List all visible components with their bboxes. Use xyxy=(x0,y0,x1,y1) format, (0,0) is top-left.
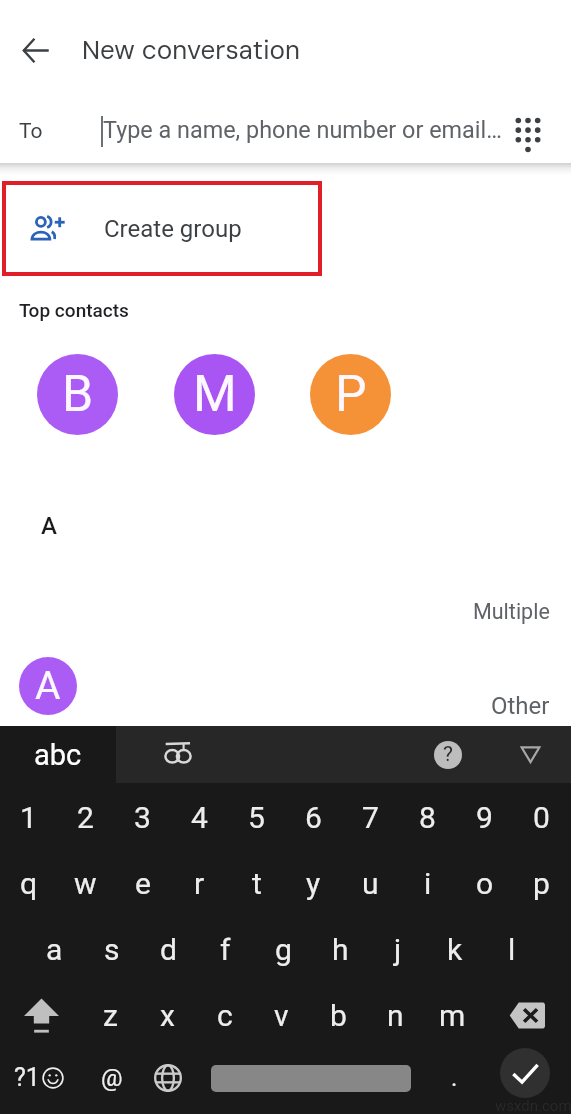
staticText: Create group xyxy=(104,215,242,243)
button[interactable]: Create group xyxy=(2,181,322,276)
staticText: c xyxy=(217,998,233,1033)
staticText: z xyxy=(103,998,118,1033)
staticText: g xyxy=(275,932,292,967)
button[interactable]: 7 xyxy=(342,789,399,846)
staticText: r xyxy=(194,866,205,901)
button[interactable]: v xyxy=(253,987,310,1044)
button[interactable]: t xyxy=(228,855,285,912)
button[interactable]: Hide keyboard xyxy=(507,726,553,783)
button[interactable]: Symbols and emoji xyxy=(0,1047,75,1109)
staticText: 2 xyxy=(77,800,94,835)
staticText: B xyxy=(62,365,94,424)
button[interactable]: s xyxy=(83,921,140,978)
staticText: Top contacts xyxy=(19,299,129,321)
button[interactable]: B xyxy=(37,354,118,435)
staticText: f xyxy=(220,932,231,967)
staticText: ?1 xyxy=(14,1063,40,1092)
button[interactable]: a xyxy=(26,921,83,978)
button[interactable]: u xyxy=(342,855,399,912)
button[interactable]: Back xyxy=(12,26,60,74)
button[interactable]: 6 xyxy=(285,789,342,846)
staticText: h xyxy=(332,932,349,967)
staticText: A xyxy=(35,663,61,709)
button[interactable]: p xyxy=(513,855,570,912)
button[interactable]: h xyxy=(312,921,369,978)
button[interactable]: w xyxy=(57,855,114,912)
button[interactable]: 8 xyxy=(399,789,456,846)
button[interactable]: n xyxy=(367,987,424,1044)
button[interactable]: r xyxy=(171,855,228,912)
staticText: m xyxy=(439,998,466,1033)
button[interactable]: A xyxy=(19,657,77,715)
staticText: Other xyxy=(491,692,550,720)
button[interactable]: 0 xyxy=(513,789,570,846)
button[interactable]: Dialpad xyxy=(505,109,551,155)
staticText: w xyxy=(74,866,97,901)
staticText: 8 xyxy=(419,800,436,835)
staticText: b xyxy=(330,998,347,1033)
staticText: q xyxy=(20,866,38,901)
staticText: 7 xyxy=(362,800,379,835)
staticText: e xyxy=(135,866,151,901)
button[interactable]: 4 xyxy=(171,789,228,846)
staticText: n xyxy=(387,998,404,1033)
button[interactable]: Kannada keyboard xyxy=(116,723,240,780)
button[interactable]: o xyxy=(456,855,513,912)
staticText: k xyxy=(447,932,463,967)
button[interactable]: c xyxy=(196,987,253,1044)
button[interactable]: g xyxy=(255,921,312,978)
button[interactable]: Backspace xyxy=(482,987,571,1044)
staticText: d xyxy=(160,932,177,967)
staticText: u xyxy=(362,866,379,901)
staticText: a xyxy=(46,932,63,967)
staticText: wsxdn.com xyxy=(495,1097,571,1114)
staticText: i xyxy=(424,866,432,901)
button[interactable]: b xyxy=(310,987,367,1044)
button[interactable]: 3 xyxy=(114,789,171,846)
button[interactable]: x xyxy=(139,987,196,1044)
staticText: To xyxy=(19,119,43,144)
staticText: 6 xyxy=(305,800,322,835)
staticText: P xyxy=(335,365,367,424)
button[interactable]: 9 xyxy=(456,789,513,846)
button[interactable]: k xyxy=(426,921,483,978)
staticText: p xyxy=(533,866,550,901)
button[interactable]: l xyxy=(483,921,540,978)
button[interactable]: Enter xyxy=(490,1042,560,1104)
button[interactable]: f xyxy=(197,921,254,978)
button[interactable]: j xyxy=(369,921,426,978)
button[interactable]: d xyxy=(140,921,197,978)
staticText: 0 xyxy=(533,800,550,835)
staticText: t xyxy=(252,866,262,901)
staticText: o xyxy=(476,866,494,901)
staticText: 5 xyxy=(248,800,265,835)
button[interactable]: P xyxy=(310,354,391,435)
staticText: 3 xyxy=(134,800,151,835)
button[interactable]: m xyxy=(424,987,481,1044)
button[interactable]: q xyxy=(0,855,57,912)
button[interactable]: i xyxy=(399,855,456,912)
button[interactable]: @ xyxy=(84,1047,139,1109)
staticText: 9 xyxy=(476,800,493,835)
button[interactable]: Space xyxy=(200,1047,422,1109)
staticText: . xyxy=(451,1064,458,1092)
button[interactable]: Shift xyxy=(0,987,82,1044)
staticText: ? xyxy=(443,742,453,767)
staticText: 4 xyxy=(191,800,208,835)
button[interactable]: M xyxy=(174,354,255,435)
button[interactable]: e xyxy=(114,855,171,912)
button[interactable]: 5 xyxy=(228,789,285,846)
button[interactable]: abc xyxy=(0,726,116,783)
staticText: A xyxy=(41,512,57,540)
button[interactable]: Change language xyxy=(140,1047,196,1109)
staticText: New conversation xyxy=(82,33,300,67)
button[interactable]: z xyxy=(82,987,139,1044)
staticText: v xyxy=(274,998,289,1033)
button[interactable]: y xyxy=(285,855,342,912)
button[interactable]: 2 xyxy=(57,789,114,846)
button[interactable]: 1 xyxy=(0,789,57,846)
staticText: Type a name, phone number or email… xyxy=(103,116,502,143)
button[interactable]: . xyxy=(428,1047,480,1109)
staticText: M xyxy=(193,365,237,424)
button[interactable]: Help xyxy=(425,726,471,783)
